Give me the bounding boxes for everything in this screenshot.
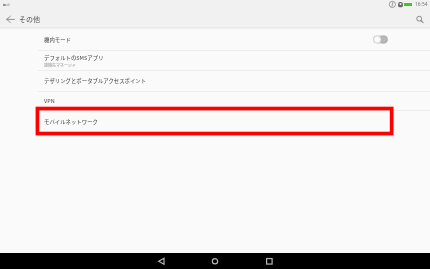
button[interactable]: Home [204, 253, 226, 269]
staticText: 連絡先マネージャ [44, 62, 76, 68]
staticText: その他 [19, 14, 40, 24]
staticText: 16:54 [415, 1, 428, 8]
button[interactable]: テザリングとポータブルアクセスポイント [0, 72, 430, 91]
staticText: VPN [44, 97, 55, 105]
staticText: モバイルネットワーク [44, 118, 98, 126]
button[interactable]: モバイルネットワーク [0, 112, 430, 132]
button[interactable]: Airplane mode toggle [373, 35, 388, 44]
button[interactable]: 機内モード [0, 28, 430, 50]
button[interactable]: VPN [0, 92, 430, 111]
button[interactable]: Back [5, 13, 17, 25]
button[interactable]: Back [150, 253, 172, 269]
staticText: 機内モード [44, 36, 71, 44]
button[interactable]: デフォルトのSMSアプリ [0, 51, 430, 70]
button[interactable]: Search [414, 13, 426, 25]
staticText: テザリングとポータブルアクセスポイント [44, 77, 147, 85]
button[interactable]: Recent apps [258, 253, 280, 269]
staticText: デフォルトのSMSアプリ [44, 54, 104, 62]
